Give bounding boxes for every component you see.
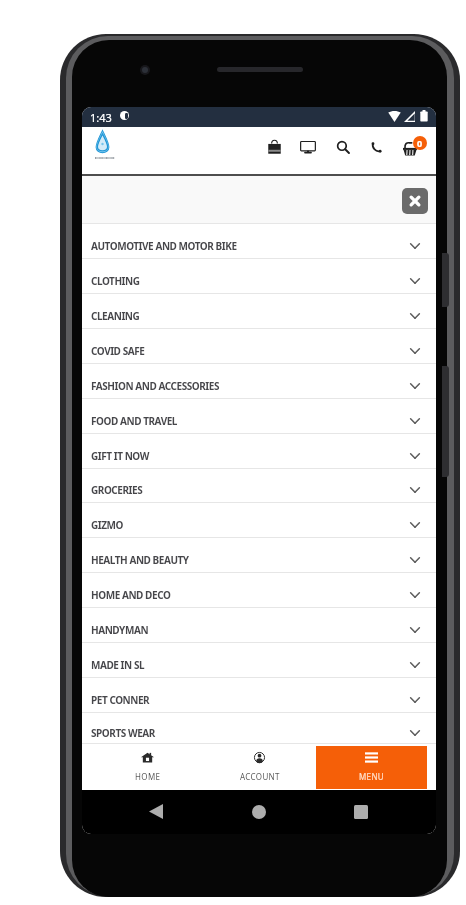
button[interactable]: PET CONNER xyxy=(82,678,436,713)
button[interactable]: AUTOMOTIVE AND MOTOR BIKE xyxy=(82,224,436,259)
button[interactable]: Search xyxy=(335,138,355,157)
button[interactable]: HOME AND DECO xyxy=(82,573,436,608)
staticText: PET CONNER xyxy=(91,693,150,707)
staticText: CLEANING xyxy=(91,309,140,323)
staticText: GROCERIES xyxy=(91,483,143,497)
staticText: FASHION AND ACCESSORIES xyxy=(91,379,219,393)
button[interactable]: MADE IN SL xyxy=(82,643,436,678)
staticText: MENU xyxy=(359,771,385,782)
staticText: HEALTH AND BEAUTY xyxy=(91,553,189,567)
staticText: AUTOMOTIVE AND MOTOR BIKE xyxy=(91,239,237,253)
button[interactable]: FOOD AND TRAVEL xyxy=(82,399,436,434)
button[interactable]: GROCERIES xyxy=(82,469,436,503)
staticText: GIZMO xyxy=(91,518,124,532)
button[interactable]: Close xyxy=(402,188,428,214)
button[interactable]: GIFT IT NOW xyxy=(82,434,436,469)
staticText: HOME xyxy=(135,771,161,782)
button[interactable]: CLEANING xyxy=(82,294,436,329)
staticText: CLOTHING xyxy=(91,274,140,288)
button[interactable]: HANDYMAN xyxy=(82,608,436,643)
button[interactable]: Recents xyxy=(349,800,372,823)
button[interactable]: HOME xyxy=(92,746,203,789)
staticText: GIFT IT NOW xyxy=(91,449,149,463)
button[interactable]: ACCOUNT xyxy=(204,746,315,789)
staticText: HOME AND DECO xyxy=(91,588,171,602)
staticText: 1:43 xyxy=(90,110,112,125)
staticText: COVID SAFE xyxy=(91,344,145,358)
button[interactable]: Cart xyxy=(400,136,428,158)
staticText: HANDYMAN xyxy=(91,623,149,637)
staticText: MADE IN SL xyxy=(91,658,145,672)
button[interactable]: MENU xyxy=(316,746,427,789)
button[interactable]: FASHION AND ACCESSORIES xyxy=(82,364,436,399)
button[interactable]: GIZMO xyxy=(82,503,436,538)
button[interactable]: Display xyxy=(298,138,318,157)
button[interactable]: CLOTHING xyxy=(82,259,436,294)
button[interactable]: Logo xyxy=(92,129,116,172)
staticText: SPORTS WEAR xyxy=(91,726,155,740)
button[interactable]: COVID SAFE xyxy=(82,329,436,364)
button[interactable]: HEALTH AND BEAUTY xyxy=(82,538,436,573)
staticText: ACCOUNT xyxy=(240,771,280,782)
button[interactable]: Home xyxy=(247,800,270,823)
button[interactable]: SPORTS WEAR xyxy=(82,713,436,744)
staticText: FOOD AND TRAVEL xyxy=(91,414,177,428)
button[interactable]: Back xyxy=(144,800,167,823)
staticText: 0 xyxy=(417,137,423,149)
button[interactable]: Call xyxy=(368,138,388,157)
button[interactable]: Shop xyxy=(265,138,285,157)
